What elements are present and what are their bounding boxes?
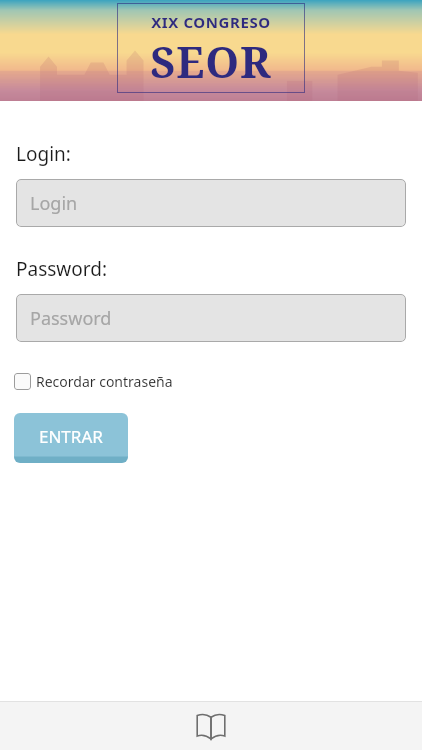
button[interactable]: Password xyxy=(16,294,406,342)
staticText: ENTRAR xyxy=(39,425,103,448)
staticText: Recordar contraseña xyxy=(36,372,173,391)
staticText: Password xyxy=(30,306,112,331)
staticText: Password: xyxy=(16,256,108,282)
staticText: XIX CONGRESO xyxy=(151,12,271,32)
button[interactable]: Bookmarks xyxy=(140,702,281,750)
staticText: SEOR xyxy=(150,32,272,91)
button[interactable]: Recordar contraseña xyxy=(14,372,173,391)
button[interactable]: Login xyxy=(16,179,406,227)
button[interactable]: ENTRAR xyxy=(14,413,128,463)
staticText: Login xyxy=(30,191,78,216)
staticText: Login: xyxy=(16,141,71,167)
